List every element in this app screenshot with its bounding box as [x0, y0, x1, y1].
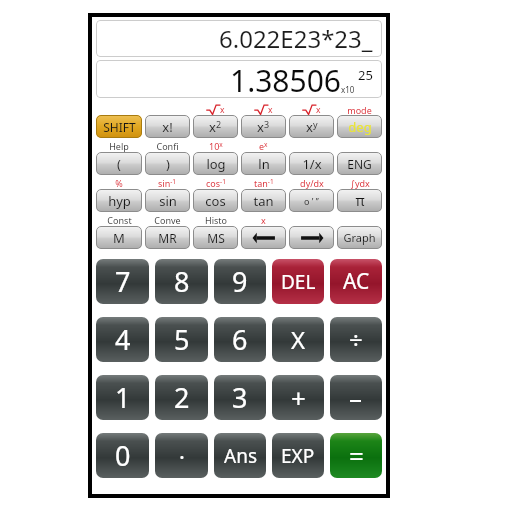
staticText: 9: [232, 263, 248, 300]
button[interactable]: =: [330, 433, 382, 478]
staticText: ex: [259, 140, 268, 152]
button[interactable]: cos: [193, 189, 238, 212]
staticText: deg: [348, 118, 372, 136]
staticText: Confi: [156, 140, 179, 152]
button[interactable]: Graph: [337, 226, 382, 249]
staticText: ): [166, 155, 170, 173]
staticText: cos: [205, 192, 226, 210]
staticText: ∫ydx: [350, 177, 370, 189]
staticText: DEL: [281, 269, 316, 295]
button[interactable]: 1.38506: [96, 60, 373, 98]
staticText: Const: [107, 214, 132, 226]
button[interactable]: x!: [145, 115, 190, 138]
staticText: sin: [159, 192, 177, 210]
staticText: SHIFT: [103, 119, 136, 135]
button[interactable]: 1: [96, 375, 149, 420]
button[interactable]: 2: [155, 375, 208, 420]
staticText: tan-1: [254, 177, 274, 189]
button[interactable]: M: [96, 226, 142, 249]
staticText: π: [355, 191, 365, 210]
staticText: ln: [258, 155, 270, 173]
staticText: Help: [109, 140, 129, 152]
button[interactable]: o ’ ’’: [289, 189, 334, 212]
staticText: dy/dx: [300, 177, 324, 189]
button[interactable]: 7: [96, 259, 149, 304]
staticText: log: [206, 155, 226, 173]
staticText: x: [268, 104, 273, 115]
staticText: cos-1: [206, 177, 226, 189]
button[interactable]: (: [96, 152, 142, 175]
button[interactable]: EXP: [272, 433, 324, 478]
button[interactable]: +: [272, 375, 324, 420]
staticText: Conve: [154, 214, 181, 226]
button[interactable]: ENG: [337, 152, 382, 175]
button[interactable]: MS: [193, 226, 238, 249]
button[interactable]: X: [272, 317, 324, 362]
button[interactable]: –: [330, 375, 382, 420]
button[interactable]: log: [193, 152, 238, 175]
staticText: x2: [209, 118, 222, 136]
staticText: 2: [174, 379, 190, 416]
staticText: Histo: [205, 214, 227, 226]
button[interactable]: 8: [155, 259, 208, 304]
button[interactable]: ): [145, 152, 190, 175]
staticText: ÷: [349, 323, 363, 356]
staticText: x: [316, 104, 321, 115]
staticText: 6: [232, 321, 248, 358]
button[interactable]: 4: [96, 317, 149, 362]
button[interactable]: 6: [214, 317, 266, 362]
button[interactable]: 1/x: [289, 152, 334, 175]
staticText: =: [349, 438, 364, 473]
staticText: x: [261, 214, 266, 226]
button[interactable]: π: [337, 189, 382, 212]
staticText: xy: [306, 118, 318, 136]
button[interactable]: SHIFT: [96, 115, 142, 138]
staticText: EXP: [281, 443, 315, 469]
staticText: 25: [358, 66, 373, 84]
staticText: 10x: [209, 140, 223, 152]
button[interactable]: 9: [214, 259, 266, 304]
staticText: 4: [115, 321, 131, 358]
staticText: 6.022E23*23_: [219, 22, 373, 55]
button[interactable]: sin: [145, 189, 190, 212]
staticText: –: [349, 380, 363, 415]
staticText: 1.38506: [230, 60, 341, 98]
button[interactable]: Ans: [214, 433, 266, 478]
staticText: AC: [343, 267, 370, 296]
button[interactable]: ÷: [330, 317, 382, 362]
staticText: 5: [174, 321, 190, 358]
button[interactable]: 3: [214, 375, 266, 420]
staticText: 8: [174, 263, 190, 300]
staticText: hyp: [108, 192, 131, 210]
button[interactable]: x3: [241, 115, 286, 138]
button[interactable]: deg: [337, 115, 382, 138]
staticText: x10: [341, 84, 355, 95]
staticText: %: [115, 177, 123, 189]
button[interactable]: Move left: [241, 226, 286, 249]
staticText: 0: [115, 437, 131, 474]
staticText: Graph: [343, 230, 376, 245]
staticText: tan: [253, 192, 274, 210]
staticText: ENG: [347, 156, 372, 172]
staticText: 3: [232, 379, 248, 416]
button[interactable]: xy: [289, 115, 334, 138]
button[interactable]: x2: [193, 115, 238, 138]
staticText: 1: [115, 379, 131, 416]
button[interactable]: ·: [155, 433, 208, 478]
button[interactable]: Move right: [289, 226, 334, 249]
button[interactable]: tan: [241, 189, 286, 212]
staticText: mode: [347, 104, 372, 115]
staticText: Ans: [224, 443, 257, 469]
button[interactable]: DEL: [272, 259, 324, 304]
button[interactable]: AC: [330, 259, 382, 304]
staticText: sin-1: [158, 177, 177, 189]
button[interactable]: 5: [155, 317, 208, 362]
staticText: MS: [207, 230, 225, 246]
button[interactable]: MR: [145, 226, 190, 249]
button[interactable]: 0: [96, 433, 149, 478]
button[interactable]: hyp: [96, 189, 142, 212]
staticText: x!: [162, 118, 173, 136]
staticText: M: [113, 229, 125, 247]
button[interactable]: ln: [241, 152, 286, 175]
button[interactable]: 6.022E23*23_: [96, 20, 373, 57]
